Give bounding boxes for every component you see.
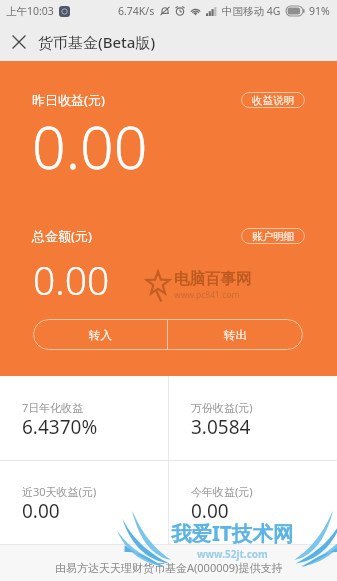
staticText: 0.00 [191, 498, 229, 524]
button[interactable]: 7日年化收益 [0, 376, 168, 460]
staticText: 由易方达天天理财货币基金A(000009)提供支持 [55, 560, 283, 575]
staticText: 7日年化收益 [22, 400, 84, 415]
staticText: 6.74K/s [118, 4, 155, 18]
staticText: 我爱IT技术网 [171, 519, 294, 547]
staticText: 昨日收益(元) [32, 91, 105, 109]
staticText: 今年收益(元) [191, 484, 253, 499]
staticText: 货币基金(Beta版) [38, 32, 156, 52]
staticText: 3.0584 [191, 414, 251, 440]
staticText: 收益说明 [252, 94, 294, 107]
staticText: 0.00 [22, 498, 60, 524]
staticText: 转出 [224, 328, 247, 342]
button[interactable]: 近30天收益(元) [0, 461, 168, 544]
staticText: 万份收益(元) [191, 400, 253, 415]
staticText: 0.00 [33, 253, 110, 306]
staticText: www.pc841.com [174, 289, 240, 301]
staticText: 91% [309, 4, 330, 18]
staticText: www.52jt.com [197, 547, 268, 561]
staticText: 总金额(元) [32, 227, 92, 245]
button[interactable]: 今年收益(元) [169, 461, 337, 544]
button[interactable]: 万份收益(元) [169, 376, 337, 460]
staticText: 0.00 [32, 106, 148, 186]
button[interactable]: 转入 [33, 319, 167, 350]
button[interactable]: 转出 [168, 319, 303, 350]
staticText: 电脑百事网 [174, 269, 252, 289]
button[interactable]: 收益说明 [241, 92, 305, 108]
button[interactable]: Close [0, 22, 38, 61]
staticText: 中国移动 4G [222, 4, 281, 18]
button[interactable]: 账户明细 [241, 228, 305, 244]
staticText: 账户明细 [252, 230, 294, 243]
staticText: 近30天收益(元) [22, 484, 97, 499]
staticText: 上午10:03 [6, 4, 54, 18]
staticText: 转入 [89, 328, 112, 342]
staticText: 6.4370% [22, 414, 98, 440]
